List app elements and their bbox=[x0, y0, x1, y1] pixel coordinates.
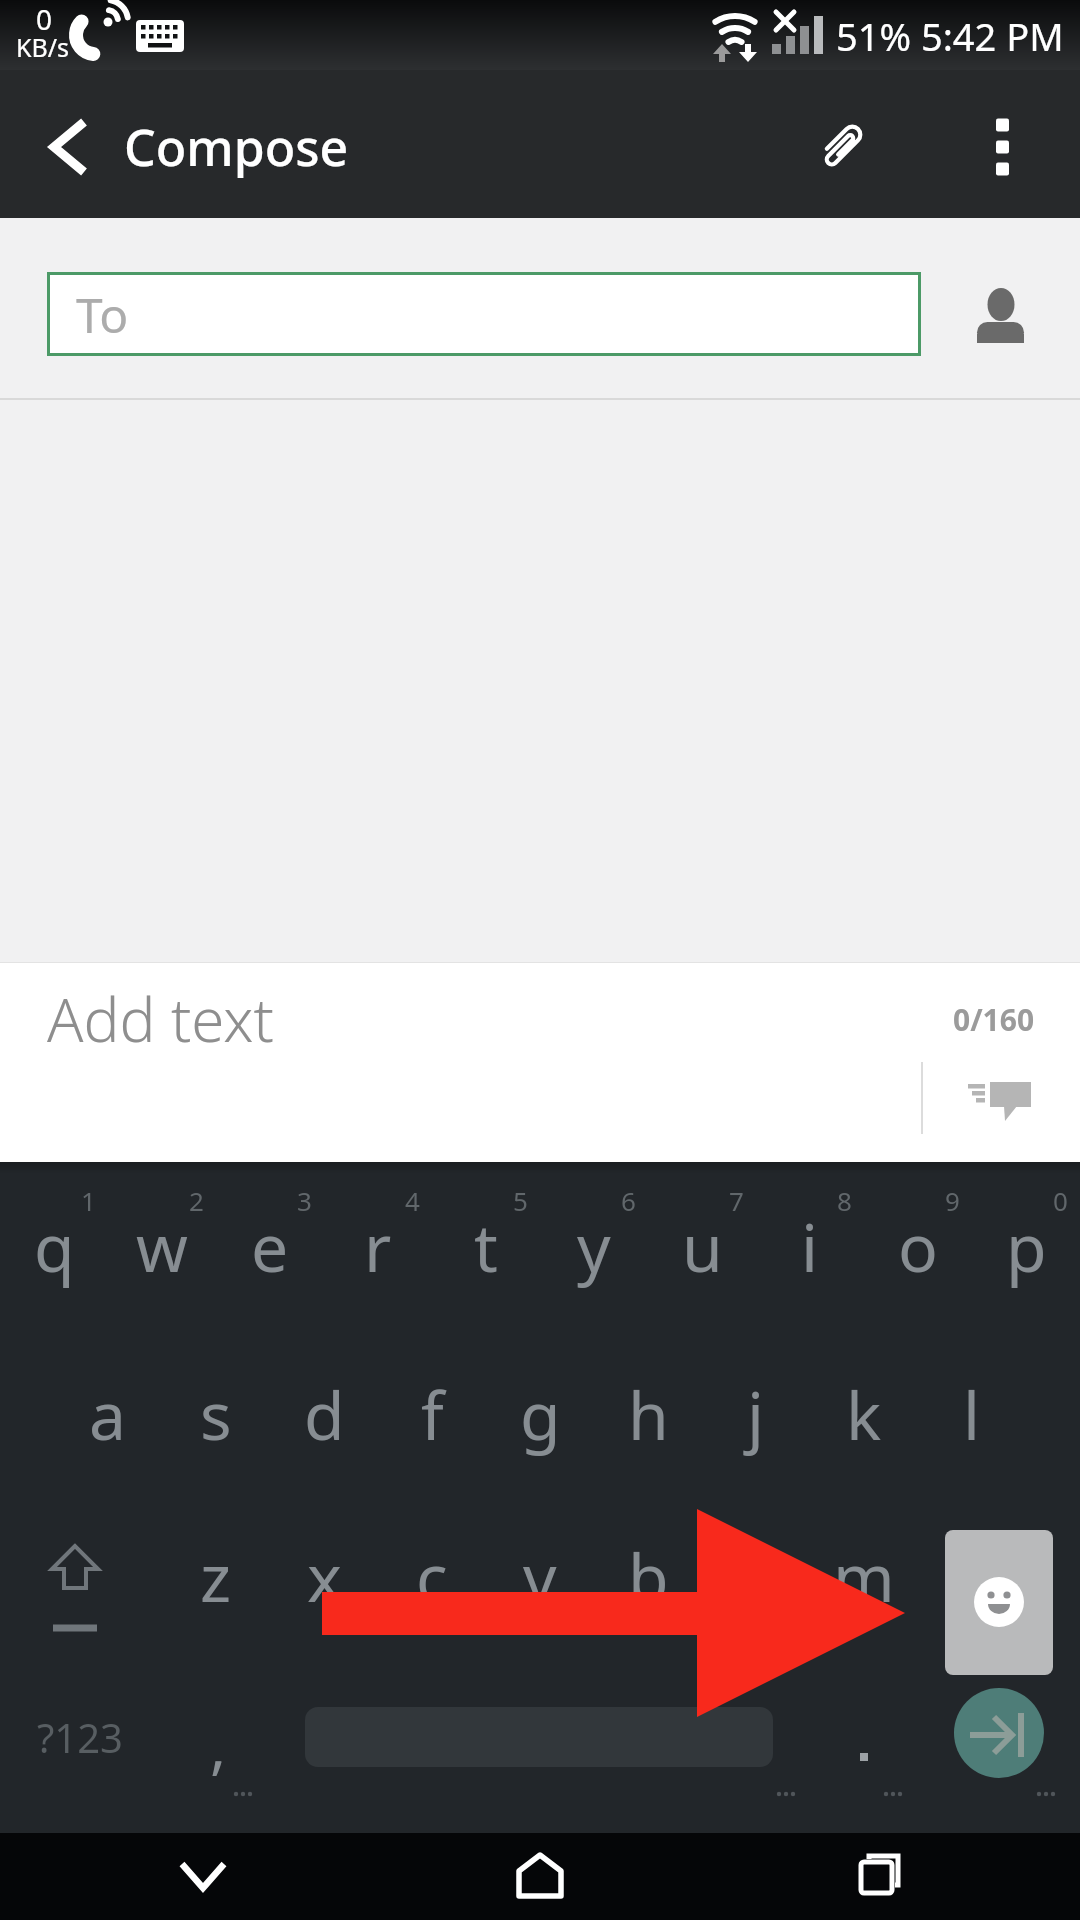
button[interactable]: l bbox=[918, 1330, 1026, 1498]
button[interactable]: m bbox=[810, 1492, 918, 1660]
staticText: 8 bbox=[837, 1183, 852, 1218]
button[interactable]: n bbox=[702, 1492, 810, 1660]
staticText: l bbox=[963, 1369, 981, 1459]
button[interactable]: h bbox=[594, 1330, 702, 1498]
button[interactable]: x bbox=[270, 1492, 378, 1660]
staticText: 0 bbox=[1053, 1183, 1068, 1218]
button[interactable]: a bbox=[54, 1330, 162, 1498]
staticText: z bbox=[200, 1531, 232, 1621]
staticText: v bbox=[523, 1531, 557, 1621]
button[interactable]: c bbox=[378, 1492, 486, 1660]
staticText: o bbox=[898, 1201, 938, 1291]
staticText: p bbox=[1006, 1201, 1047, 1291]
staticText: 0/160 bbox=[953, 999, 1035, 1040]
staticText: q bbox=[34, 1201, 75, 1291]
staticText: 9 bbox=[945, 1183, 960, 1218]
button[interactable] bbox=[25, 1505, 125, 1640]
staticText: 4 bbox=[405, 1183, 420, 1218]
button[interactable]: r bbox=[324, 1162, 432, 1330]
staticText: i bbox=[801, 1201, 819, 1291]
staticText: 0 bbox=[36, 0, 53, 36]
button[interactable]: , bbox=[170, 1700, 266, 1790]
button[interactable]: s bbox=[162, 1330, 270, 1498]
staticText: c bbox=[416, 1531, 448, 1621]
staticText: 3 bbox=[297, 1183, 312, 1218]
button[interactable]: i bbox=[756, 1162, 864, 1330]
button[interactable]: z bbox=[162, 1492, 270, 1660]
button[interactable]: p bbox=[972, 1162, 1080, 1330]
button[interactable] bbox=[493, 1840, 588, 1915]
staticText: m bbox=[833, 1531, 895, 1621]
button[interactable]: y bbox=[540, 1162, 648, 1330]
button[interactable] bbox=[965, 100, 1040, 192]
button[interactable]: ?123 bbox=[28, 1700, 132, 1774]
button[interactable] bbox=[155, 1840, 250, 1915]
staticText: a bbox=[89, 1369, 127, 1459]
button[interactable] bbox=[945, 1060, 1055, 1135]
staticText: x bbox=[307, 1531, 342, 1621]
button[interactable] bbox=[20, 100, 115, 195]
button[interactable]: f bbox=[378, 1330, 486, 1498]
staticText: 5 bbox=[513, 1183, 528, 1218]
button[interactable] bbox=[305, 1707, 773, 1767]
staticText: s bbox=[200, 1369, 232, 1459]
staticText: ?123 bbox=[37, 1710, 123, 1764]
button[interactable] bbox=[0, 962, 1080, 1162]
staticText: n bbox=[736, 1531, 777, 1621]
staticText: f bbox=[421, 1369, 444, 1459]
button[interactable]: q bbox=[0, 1162, 108, 1330]
button[interactable]: k bbox=[810, 1330, 918, 1498]
button[interactable] bbox=[795, 100, 885, 192]
button[interactable] bbox=[954, 1688, 1044, 1778]
button[interactable]: u bbox=[648, 1162, 756, 1330]
staticText: w bbox=[136, 1201, 188, 1291]
staticText: 7 bbox=[729, 1183, 744, 1218]
staticText: e bbox=[251, 1201, 289, 1291]
staticText: u bbox=[682, 1201, 723, 1291]
staticText: t bbox=[474, 1201, 498, 1291]
staticText: y bbox=[577, 1201, 611, 1291]
button[interactable]: To bbox=[47, 272, 921, 356]
button[interactable] bbox=[820, 1710, 906, 1790]
staticText: g bbox=[520, 1369, 561, 1459]
staticText: k bbox=[846, 1369, 882, 1459]
staticText: , bbox=[210, 1704, 227, 1786]
button[interactable]: t bbox=[432, 1162, 540, 1330]
button[interactable] bbox=[830, 1840, 925, 1915]
button[interactable]: g bbox=[486, 1330, 594, 1498]
staticText: 6 bbox=[621, 1183, 636, 1218]
button[interactable]: v bbox=[486, 1492, 594, 1660]
button[interactable]: d bbox=[270, 1330, 378, 1498]
staticText: b bbox=[628, 1531, 669, 1621]
button[interactable]: b bbox=[594, 1492, 702, 1660]
button[interactable]: j bbox=[702, 1330, 810, 1498]
staticText: To bbox=[76, 282, 129, 347]
staticText: j bbox=[747, 1369, 765, 1459]
button[interactable] bbox=[945, 1530, 1053, 1675]
button[interactable]: w bbox=[108, 1162, 216, 1330]
staticText: d bbox=[304, 1369, 345, 1459]
staticText: 51% 5:42 PM bbox=[836, 10, 1064, 58]
staticText: Compose bbox=[124, 113, 349, 181]
staticText: r bbox=[364, 1201, 392, 1291]
staticText: 1 bbox=[81, 1183, 96, 1218]
staticText: 2 bbox=[189, 1183, 204, 1218]
staticText: h bbox=[628, 1369, 669, 1459]
button[interactable] bbox=[960, 268, 1042, 358]
staticText: KB/s bbox=[16, 30, 70, 64]
staticText: Add text bbox=[47, 978, 274, 1060]
button[interactable]: e bbox=[216, 1162, 324, 1330]
button[interactable]: o bbox=[864, 1162, 972, 1330]
